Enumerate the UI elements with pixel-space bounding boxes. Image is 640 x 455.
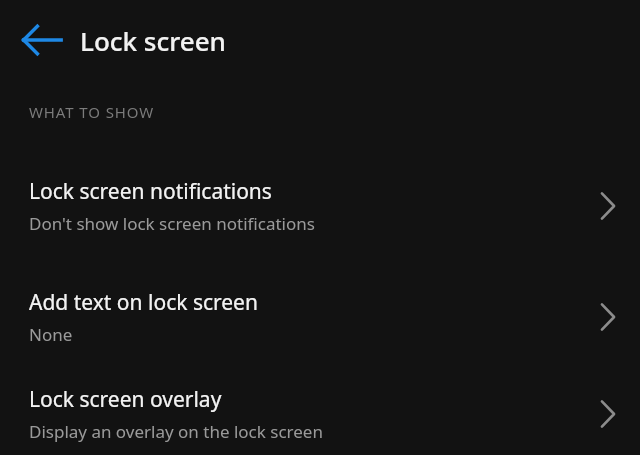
staticText: Display an overlay on the lock screen (29, 420, 323, 443)
staticText: WHAT TO SHOW (29, 102, 155, 122)
staticText: Lock screen (80, 23, 226, 58)
staticText: Lock screen overlay (29, 385, 222, 414)
button[interactable]: Lock screen notifications (0, 150, 640, 261)
button[interactable]: Lock screen overlay (0, 372, 640, 455)
staticText: None (29, 323, 73, 346)
staticText: Add text on lock screen (29, 288, 258, 317)
button[interactable]: Back (14, 12, 70, 68)
button[interactable]: Add text on lock screen (0, 261, 640, 372)
staticText: Don't show lock screen notifications (29, 212, 315, 235)
staticText: Lock screen notifications (29, 177, 272, 206)
